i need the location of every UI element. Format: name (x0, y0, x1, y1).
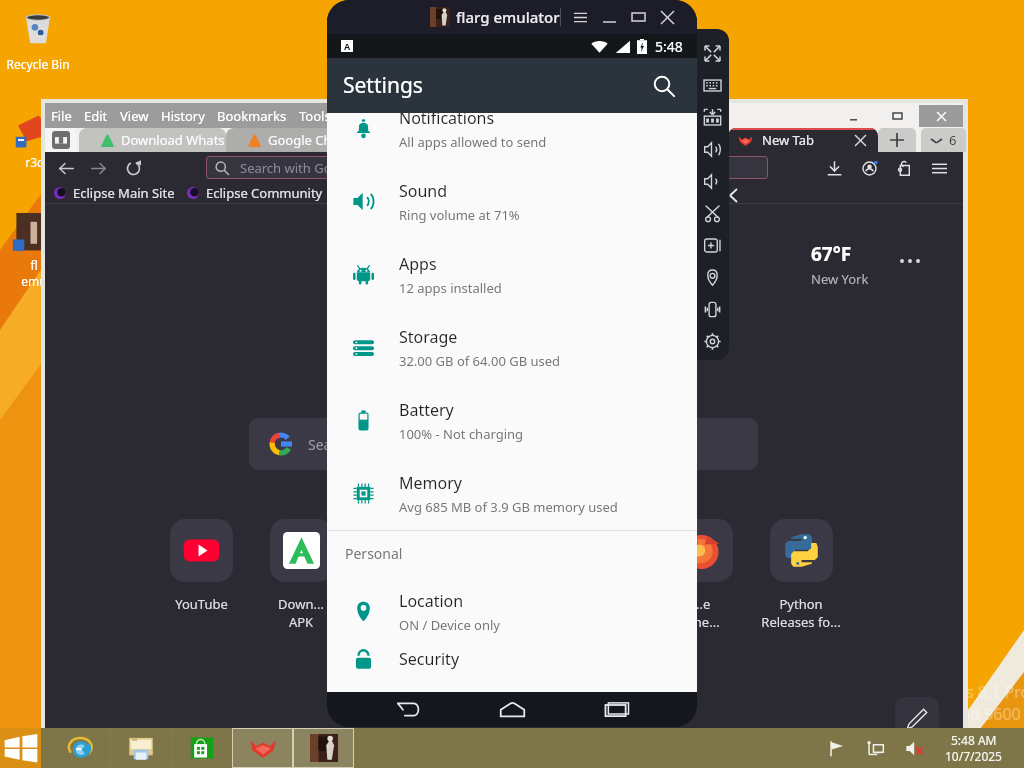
button[interactable]: Screenshot (696, 197, 729, 229)
button[interactable]: flarg emulator (293, 728, 354, 768)
staticText: Download Whats (121, 131, 225, 149)
button[interactable]: Volume up (696, 133, 729, 165)
button[interactable]: Downloads (821, 155, 847, 181)
staticText: Eclipse Main Site (73, 184, 175, 202)
button[interactable]: History (155, 103, 211, 128)
staticText: 12 apps installed (399, 279, 502, 297)
button[interactable]: Settings (696, 325, 729, 357)
button[interactable]: Customize (895, 697, 939, 741)
button[interactable]: Tools (293, 103, 337, 128)
button[interactable] (451, 519, 551, 613)
button[interactable]: Maximize (626, 0, 650, 34)
button[interactable]: RStudio (329, 183, 408, 203)
button[interactable]: Search with Google or enter address (206, 156, 768, 179)
staticText: New York (811, 270, 869, 288)
button[interactable]: Eclipse Main Site (48, 183, 181, 203)
button[interactable]: Google Chrom (226, 128, 373, 152)
button[interactable]: View (114, 103, 155, 128)
button[interactable]: Store (171, 728, 232, 768)
button[interactable] (351, 519, 451, 613)
staticText: File (51, 107, 72, 125)
staticText: Storage (399, 326, 458, 348)
button[interactable]: Forward (85, 155, 111, 181)
button[interactable]: Search with Google or enter address (249, 418, 758, 470)
staticText: 100% - Not charging (399, 425, 524, 443)
button[interactable]: Fullscreen (696, 37, 729, 69)
button[interactable]: Edit (78, 103, 114, 128)
staticText: YouTube (175, 595, 228, 613)
staticText: ld 9600 (966, 703, 1021, 725)
button[interactable]: Minimize (597, 0, 621, 34)
staticText: 32.00 GB of 64.00 GB used (399, 352, 561, 370)
button[interactable]: Install APK (696, 101, 729, 133)
staticText: A (344, 40, 351, 52)
button[interactable]: Internet Explorer (49, 728, 110, 768)
button[interactable]: Recent apps (593, 692, 641, 727)
button[interactable]: New Tab (728, 128, 878, 152)
button[interactable]: Storage (327, 311, 697, 384)
button[interactable]: Location (696, 261, 729, 293)
button[interactable]: YouTube (151, 519, 251, 613)
button[interactable]: Firefox (232, 728, 293, 768)
button[interactable]: fl emu (6, 213, 62, 289)
button[interactable]: Recycle Bin (0, 8, 76, 72)
button[interactable]: Notifications (327, 113, 697, 165)
staticText: Security (399, 648, 460, 670)
button[interactable]: Volume down (696, 165, 729, 197)
button[interactable]: Memory (327, 457, 697, 530)
staticText: Memory (399, 472, 462, 494)
button[interactable]: Rotate (696, 293, 729, 325)
button[interactable]: Security (327, 648, 697, 671)
staticText: Edit (84, 107, 108, 125)
button[interactable]: Location (327, 575, 697, 648)
staticText: fl emu (21, 257, 47, 289)
button[interactable]: ...e ...he... (651, 519, 751, 631)
button[interactable]: Eclipse Community (181, 183, 329, 203)
button[interactable]: Account (856, 155, 882, 181)
staticText: 67°F (811, 241, 852, 267)
button[interactable]: Maximize (875, 105, 919, 127)
button[interactable]: Home (488, 692, 536, 727)
button[interactable]: Close (919, 105, 963, 127)
button[interactable]: 6 (921, 128, 966, 152)
button[interactable]: Battery (327, 384, 697, 457)
button[interactable]: Back (53, 155, 79, 181)
button[interactable]: Add (696, 229, 729, 261)
button[interactable]: New tab (878, 128, 916, 152)
staticText: flarg emulator (456, 7, 560, 27)
button[interactable]: Start (0, 728, 41, 768)
button[interactable]: File Explorer (110, 728, 171, 768)
button[interactable]: Download Whats (79, 128, 226, 152)
staticText: Sound (399, 180, 448, 202)
button[interactable]: Show more bookmarks (723, 184, 743, 206)
staticText: Down... APK (278, 595, 324, 631)
button[interactable]: Reload (120, 155, 146, 181)
staticText: Avg 685 MB of 3.9 GB memory used (399, 498, 618, 516)
button[interactable]: List all tabs (45, 128, 76, 152)
button[interactable]: Back (384, 692, 432, 727)
staticText: Search with Google or enter address (240, 159, 463, 177)
button[interactable]: File (45, 103, 78, 128)
button[interactable]: Apps (327, 238, 697, 311)
staticText: Location (399, 590, 464, 612)
button[interactable]: Minimize (831, 105, 875, 127)
staticText: Apps (399, 253, 437, 275)
button[interactable]: Bookmarks (211, 103, 293, 128)
button[interactable]: Extensions (891, 155, 917, 181)
button[interactable]: Search settings (641, 63, 687, 109)
button[interactable]: Menu (926, 155, 952, 181)
button[interactable]: More weather options (893, 254, 927, 268)
staticText: Help (343, 107, 372, 125)
button[interactable]: Sound (327, 165, 697, 238)
button[interactable]: Keyboard (696, 69, 729, 101)
button[interactable]: Help (337, 103, 378, 128)
staticText: New Tab (762, 131, 815, 149)
staticText: Tools (299, 107, 331, 125)
button[interactable]: Menu (568, 0, 592, 34)
button[interactable]: Python Releases fo... (751, 519, 851, 631)
button[interactable]: r3c (6, 114, 62, 170)
staticText: ON / Device only (399, 616, 500, 634)
button[interactable]: Down... APK (251, 519, 351, 631)
button[interactable]: Close (655, 0, 679, 34)
